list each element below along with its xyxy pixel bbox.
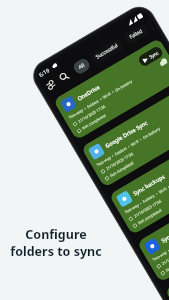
staticText: Not completed <box>137 207 163 225</box>
button[interactable]: Running <box>146 19 156 32</box>
staticText: 21/10/2023 17:36 <box>77 104 106 124</box>
button[interactable]: Sync to Dropbox <box>137 180 169 283</box>
staticText: OneDrive <box>76 83 101 102</box>
staticText: Failed <box>128 28 144 41</box>
staticText: 21/10/2023 17:36 <box>133 198 162 218</box>
button[interactable]: Sort <box>41 76 59 94</box>
staticText: Two-way • Folders • Wi-Fi • On battery <box>151 221 169 262</box>
staticText: Two-way • Folders • Wi-Fi • On battery <box>68 79 133 120</box>
button[interactable]: Sync backups <box>109 132 169 235</box>
staticText: 6:19 <box>37 66 50 78</box>
button[interactable]: Failed <box>122 23 150 46</box>
button[interactable]: Search <box>55 68 73 85</box>
staticText: Not completed <box>165 255 169 273</box>
staticText: Google Drive Sync <box>104 119 149 149</box>
button[interactable]: Google Drive Sync <box>81 85 169 188</box>
staticText: Two-way • Folders • Wi-Fi • On battery <box>124 173 169 215</box>
other: Cloud status <box>157 56 169 68</box>
staticText: Two-way • Folders • Wi-Fi • On battery <box>96 126 161 167</box>
button[interactable]: Successful <box>89 37 125 66</box>
staticText: Configure folders to sync <box>6 226 106 260</box>
staticText: Sync to Dropbox <box>160 216 169 244</box>
staticText: Sync backups <box>132 172 166 197</box>
staticText: Not completed <box>81 113 107 131</box>
button[interactable]: Photos <box>164 227 169 300</box>
staticText: Successful <box>94 42 120 61</box>
staticText: 21/10/2023 17:36 <box>105 151 134 171</box>
staticText: All <box>77 62 86 71</box>
button[interactable]: OneDrive <box>53 38 169 140</box>
staticText: 21/10/2023 17:36 <box>161 246 169 266</box>
staticText: Not completed <box>109 160 135 178</box>
button[interactable]: Sync <box>137 45 164 68</box>
staticText: Sync <box>148 49 160 60</box>
button[interactable]: All <box>71 57 92 76</box>
